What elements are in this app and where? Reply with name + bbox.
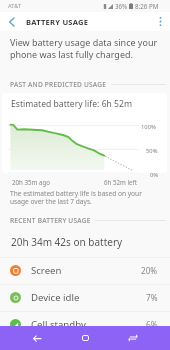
staticText: PAST AND PREDICTED USAGE: [10, 80, 107, 89]
staticText: 8:26 PM: [135, 2, 159, 10]
button[interactable]: Navigate up: [0, 12, 22, 31]
staticText: The estimated battery life is based on y…: [10, 189, 162, 206]
staticText: Device idle: [31, 291, 146, 304]
staticText: 50%: [146, 147, 158, 155]
staticText: View battery usage data since your phone…: [10, 36, 162, 60]
staticText: 36%: [115, 2, 128, 10]
staticText: 6%: [146, 319, 158, 330]
staticText: 20%: [141, 265, 158, 276]
staticText: 7%: [146, 292, 158, 303]
staticText: RECENT BATTERY USAGE: [10, 216, 91, 225]
button[interactable]: Home: [61, 326, 109, 350]
staticText: 100%: [141, 123, 156, 131]
staticText: 6h 52m left: [104, 178, 137, 186]
staticText: Screen: [31, 264, 141, 277]
staticText: 20h 35m ago: [12, 178, 51, 186]
staticText: BATTERY USAGE: [26, 17, 89, 27]
staticText: Estimated battery life: 6h 52m: [11, 98, 132, 110]
staticText: 0%: [150, 171, 159, 179]
button[interactable]: Back: [13, 326, 61, 350]
staticText: 20h 34m 42s on battery: [11, 235, 123, 249]
button[interactable]: More options: [146, 12, 170, 31]
staticText: AT&T: [8, 2, 22, 10]
staticText: Cell standby: [31, 318, 146, 331]
button[interactable]: Screen: [0, 257, 170, 284]
button[interactable]: Recent apps: [109, 326, 157, 350]
button[interactable]: Device idle: [0, 284, 170, 311]
button[interactable]: Cell standby: [0, 311, 170, 338]
